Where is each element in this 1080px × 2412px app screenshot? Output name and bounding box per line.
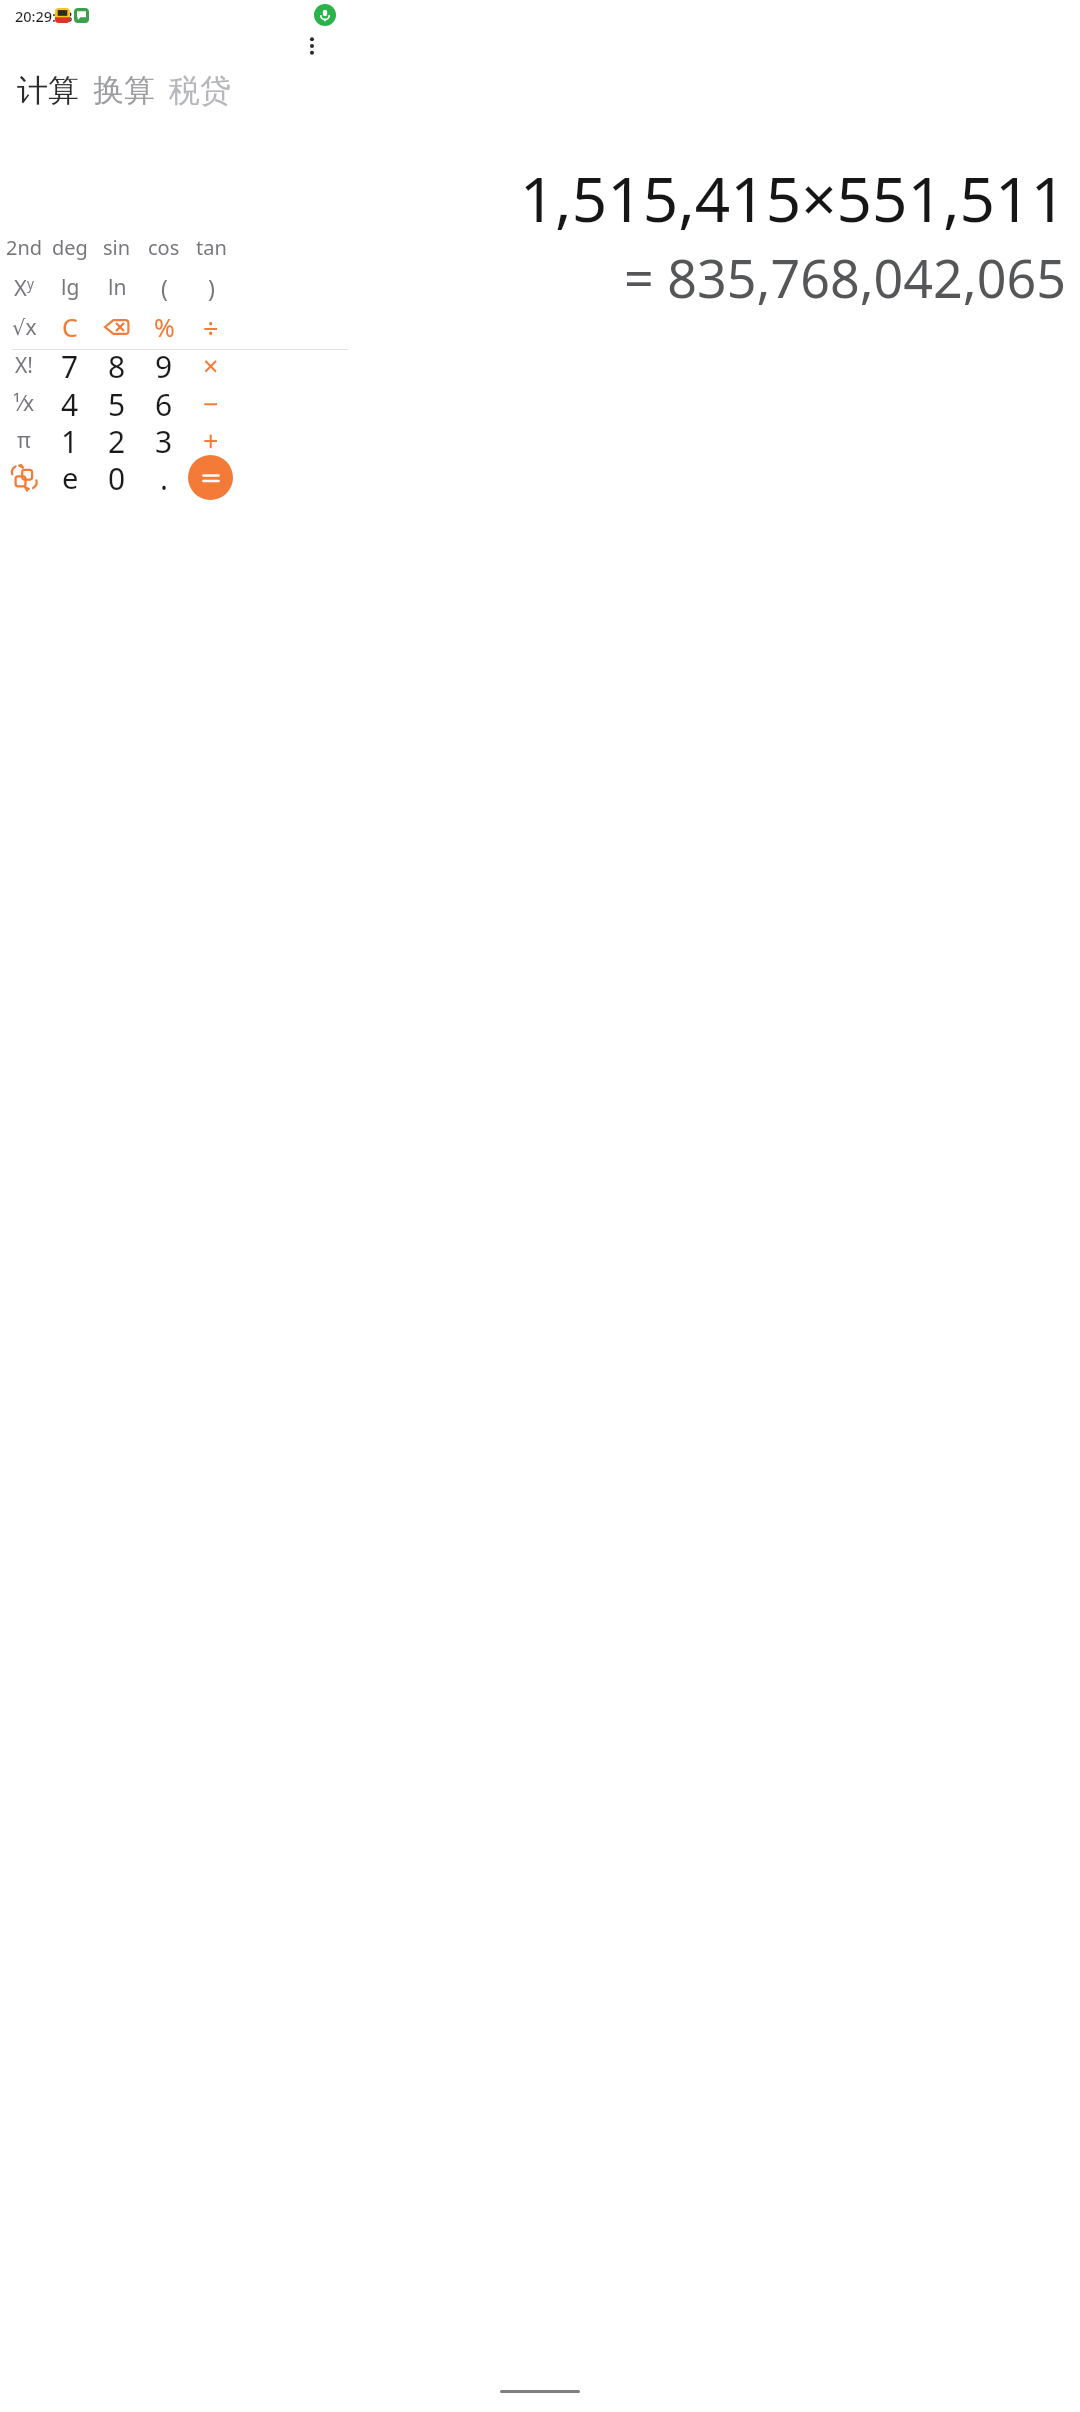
button[interactable]: 换算	[90, 71, 158, 110]
button[interactable]: 9	[131, 346, 197, 384]
staticText: 1,515,415×551,511	[519, 156, 1066, 240]
button[interactable]: deg	[37, 228, 103, 266]
button[interactable]: More options	[288, 22, 336, 70]
button[interactable]: ln	[84, 268, 150, 306]
button[interactable]: Xy	[0, 268, 57, 306]
staticText: %	[154, 310, 175, 344]
button[interactable]: 5	[84, 384, 150, 422]
staticText: 20:29:48	[15, 6, 73, 26]
button[interactable]: √x	[0, 308, 57, 346]
button[interactable]: sin	[84, 228, 150, 266]
button[interactable]: 4	[37, 384, 103, 422]
button[interactable]: ×	[178, 346, 244, 384]
other: Microphone active	[314, 4, 336, 26]
staticText: ÷	[203, 309, 219, 346]
staticText: 2nd	[6, 234, 43, 261]
staticText: sin	[103, 234, 131, 261]
button[interactable]: 1	[37, 421, 103, 459]
button[interactable]: .	[131, 458, 197, 496]
button[interactable]: %	[131, 308, 197, 346]
staticText: 1	[61, 421, 79, 459]
staticText: .	[160, 458, 169, 496]
staticText: = 835,768,042,065	[623, 242, 1066, 313]
button[interactable]: 税贷	[166, 71, 234, 110]
staticText: 7	[61, 346, 79, 384]
staticText: 6	[155, 384, 173, 422]
button[interactable]: 2nd	[0, 228, 57, 266]
staticText: −	[203, 385, 219, 422]
button[interactable]: Unit convert	[0, 458, 57, 496]
button[interactable]: tan	[178, 228, 244, 266]
button[interactable]: lg	[37, 268, 103, 306]
button[interactable]: Backspace	[84, 308, 150, 346]
button[interactable]: ÷	[178, 308, 244, 346]
staticText: 2	[108, 421, 126, 459]
staticText: π	[17, 426, 31, 455]
button[interactable]: e	[37, 458, 103, 496]
button[interactable]: Equals	[188, 455, 233, 500]
staticText: 9	[155, 346, 173, 384]
staticText: tan	[196, 234, 227, 261]
staticText: (	[161, 272, 168, 303]
staticText: ln	[108, 273, 127, 302]
button[interactable]: X!	[0, 346, 57, 384]
staticText: 税贷	[169, 71, 231, 110]
staticText: X!	[15, 351, 33, 380]
button[interactable]: 6	[131, 384, 197, 422]
staticText: )	[208, 272, 215, 303]
staticText: √x	[12, 313, 37, 342]
staticText: cos	[148, 234, 180, 261]
staticText: ×	[203, 347, 219, 384]
button[interactable]: 0	[84, 458, 150, 496]
staticText: 5	[108, 384, 126, 422]
button[interactable]: 2	[84, 421, 150, 459]
staticText: e	[62, 458, 79, 496]
staticText: C	[62, 310, 78, 344]
staticText: 8	[108, 346, 126, 384]
button[interactable]: (	[131, 268, 197, 306]
staticText: 3	[155, 421, 173, 459]
staticText: ¹⁄x	[13, 389, 35, 418]
button[interactable]: 3	[131, 421, 197, 459]
button[interactable]: −	[178, 384, 244, 422]
button[interactable]: +	[178, 421, 244, 459]
staticText: 4	[61, 384, 79, 422]
button[interactable]: C	[37, 308, 103, 346]
button[interactable]: )	[178, 268, 244, 306]
staticText: 计算	[17, 71, 79, 110]
staticText: 换算	[93, 71, 155, 110]
button[interactable]: cos	[131, 228, 197, 266]
staticText: Xy	[14, 272, 34, 302]
staticText: lg	[61, 273, 80, 302]
staticText: deg	[52, 234, 88, 261]
button[interactable]: ¹⁄x	[0, 384, 57, 422]
button[interactable]: 8	[84, 346, 150, 384]
staticText: +	[203, 422, 219, 459]
staticText: 0	[108, 458, 126, 496]
button[interactable]: 7	[37, 346, 103, 384]
button[interactable]: 计算	[14, 71, 82, 110]
button[interactable]: π	[0, 421, 57, 459]
